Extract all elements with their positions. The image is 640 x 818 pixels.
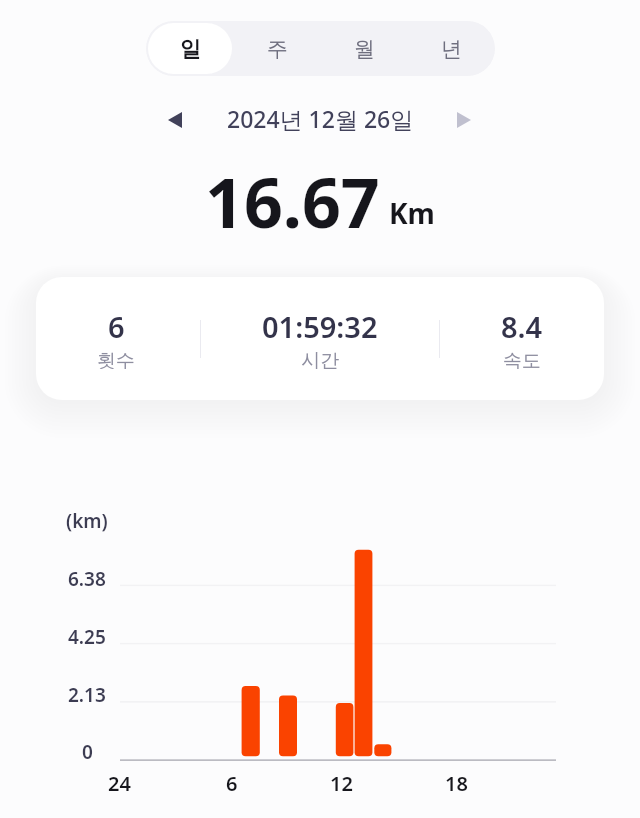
staticText: 시간	[301, 349, 339, 373]
staticText: Km	[389, 194, 435, 232]
staticText: 횟수	[97, 349, 135, 373]
staticText: (km)	[66, 508, 108, 532]
staticText: 0	[82, 739, 93, 763]
button[interactable]: 01:59:32	[204, 278, 436, 400]
staticText: 년	[441, 36, 462, 62]
staticText: 2024년 12월 26일	[227, 103, 414, 134]
staticText: 24	[108, 770, 131, 792]
button[interactable]: Previous day	[157, 102, 193, 138]
button[interactable]: Next day	[446, 102, 482, 138]
staticText: 월	[354, 36, 375, 62]
staticText: 6	[108, 307, 125, 346]
button[interactable]: 월	[321, 21, 408, 76]
staticText: 6.38	[68, 566, 106, 590]
staticText: 속도	[503, 349, 541, 373]
staticText: 2.13	[68, 682, 106, 706]
staticText: 01:59:32	[262, 307, 378, 346]
staticText: 일	[180, 36, 201, 62]
button[interactable]: 6	[36, 278, 196, 400]
staticText: 12	[330, 770, 353, 792]
staticText: 16.67	[205, 155, 380, 248]
button[interactable]: 년	[408, 21, 495, 76]
staticText: 8.4	[501, 307, 543, 346]
staticText: 4.25	[68, 624, 106, 648]
staticText: 주	[267, 36, 288, 62]
staticText: 18	[445, 770, 468, 792]
staticText: 6	[226, 770, 238, 792]
button[interactable]: 일	[146, 21, 234, 76]
button[interactable]: 주	[234, 21, 321, 76]
button[interactable]: 8.4	[442, 278, 602, 400]
